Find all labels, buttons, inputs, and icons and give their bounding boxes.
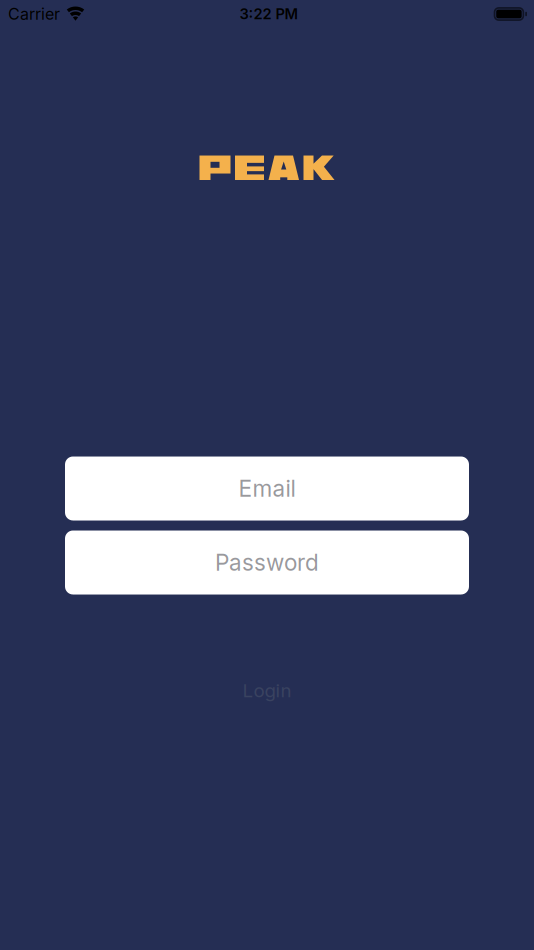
textField[interactable]: Email [65, 456, 469, 520]
secureTextField[interactable]: Password [65, 530, 469, 594]
staticText: Password [215, 549, 319, 576]
button[interactable]: Login [222, 671, 311, 709]
staticText: Login [242, 679, 291, 701]
staticText: 3:22 PM [239, 5, 298, 23]
staticText: Carrier [8, 5, 60, 23]
staticText: Email [238, 475, 295, 502]
